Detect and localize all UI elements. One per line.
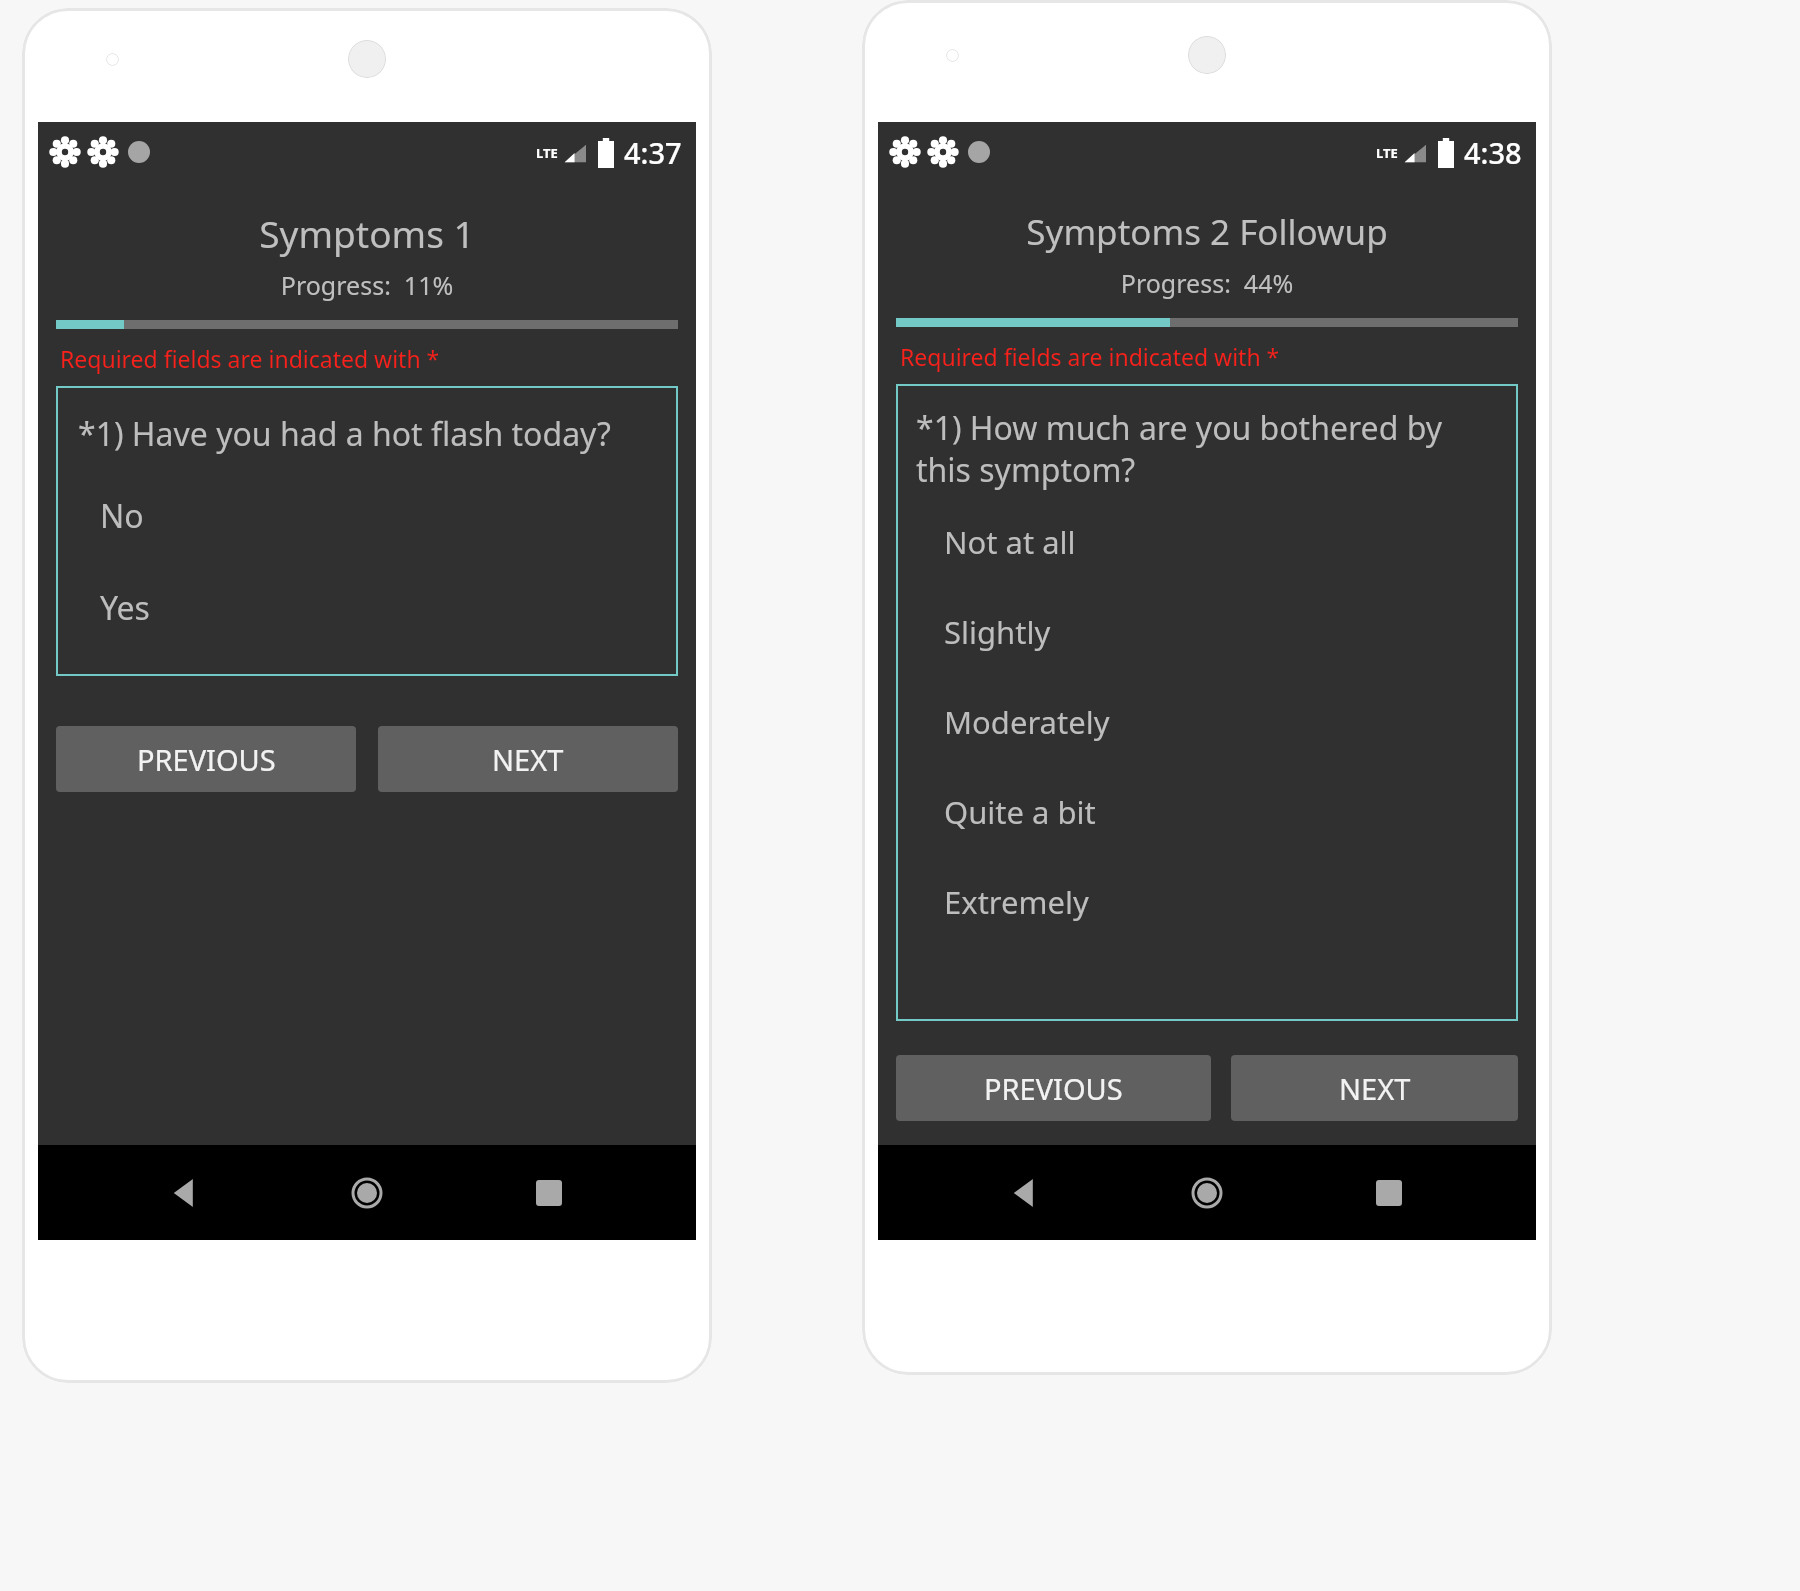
button[interactable]: Back	[150, 1158, 220, 1228]
button[interactable]: Recents	[1354, 1158, 1424, 1228]
button[interactable]: No	[100, 494, 144, 538]
button[interactable]: NEXT	[378, 726, 678, 792]
button[interactable]: Slightly	[944, 611, 1051, 653]
button[interactable]: PREVIOUS	[896, 1055, 1211, 1121]
staticText: Progress: 11%	[56, 268, 678, 302]
staticText: *1) Have you had a hot flash today?	[78, 412, 611, 456]
button[interactable]: NEXT	[1231, 1055, 1518, 1121]
button[interactable]: Recents	[514, 1158, 584, 1228]
staticText: PREVIOUS	[984, 1069, 1123, 1108]
staticText: 4:37	[624, 133, 682, 172]
button[interactable]: Moderately	[944, 701, 1110, 743]
button[interactable]: Not at all	[944, 521, 1076, 563]
staticText: Required fields are indicated with *	[60, 343, 440, 374]
button[interactable]: Home	[332, 1158, 402, 1228]
staticText: Required fields are indicated with *	[900, 341, 1280, 372]
button[interactable]: PREVIOUS	[56, 726, 356, 792]
button[interactable]: Quite a bit	[944, 791, 1096, 833]
staticText: LTE	[1376, 144, 1398, 162]
button[interactable]: Extremely	[944, 881, 1089, 923]
button[interactable]: Back	[990, 1158, 1060, 1228]
staticText: PREVIOUS	[137, 740, 276, 779]
staticText: NEXT	[1339, 1069, 1411, 1108]
staticText: Progress: 44%	[896, 266, 1518, 300]
staticText: NEXT	[492, 740, 564, 779]
staticText: 4:38	[1464, 133, 1522, 172]
staticText: *1) How much are you bothered by this sy…	[916, 406, 1498, 491]
staticText: LTE	[536, 144, 558, 162]
button[interactable]: Yes	[100, 586, 150, 630]
button[interactable]: Home	[1172, 1158, 1242, 1228]
staticText: Symptoms 1	[56, 208, 678, 258]
staticText: Symptoms 2 Followup	[896, 208, 1518, 256]
